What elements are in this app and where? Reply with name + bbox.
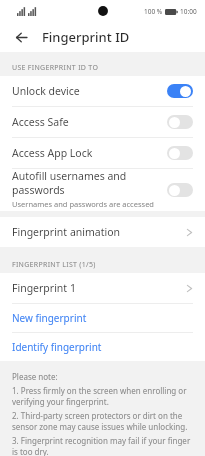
button[interactable]: On: [167, 84, 193, 98]
button[interactable]: Off: [167, 115, 193, 129]
button[interactable]: Identify fingerprint: [0, 333, 205, 361]
button[interactable]: Access Safe: [0, 107, 205, 137]
button[interactable]: Fingerprint animation: [0, 217, 205, 247]
staticText: 100 %: [144, 7, 163, 16]
staticText: USE FINGERPRINT ID TO: [12, 63, 99, 73]
button[interactable]: Off: [167, 146, 193, 160]
staticText: Usernames and passwords are accessed fro…: [12, 199, 154, 211]
button[interactable]: Autofill usernames and passwords: [0, 169, 205, 211]
button[interactable]: Unlock device: [0, 76, 205, 106]
staticText: Please note:: [12, 371, 58, 382]
button[interactable]: New fingerprint: [0, 304, 205, 332]
staticText: Unlock device: [12, 84, 167, 98]
staticText: Fingerprint 1: [12, 281, 186, 295]
staticText: Access App Lock: [12, 146, 167, 160]
staticText: 2. Third-party screen protectors or dirt…: [12, 410, 195, 432]
staticText: 10:00: [180, 7, 197, 16]
staticText: New fingerprint: [12, 311, 87, 325]
button[interactable]: Off: [167, 183, 193, 197]
staticText: 1. Press firmly on the screen when enrol…: [12, 385, 195, 407]
button[interactable]: Fingerprint 1: [0, 273, 205, 303]
staticText: Fingerprint animation: [12, 225, 186, 239]
staticText: Autofill usernames and passwords: [12, 169, 161, 197]
staticText: Identify fingerprint: [12, 340, 102, 354]
staticText: Access Safe: [12, 115, 167, 129]
staticText: 3. Fingerprint recognition may fail if y…: [12, 435, 195, 456]
button[interactable]: Back: [8, 24, 34, 50]
button[interactable]: Access App Lock: [0, 138, 205, 168]
staticText: FINGERPRINT LIST (1/5): [12, 260, 96, 270]
staticText: Fingerprint ID: [42, 28, 130, 46]
